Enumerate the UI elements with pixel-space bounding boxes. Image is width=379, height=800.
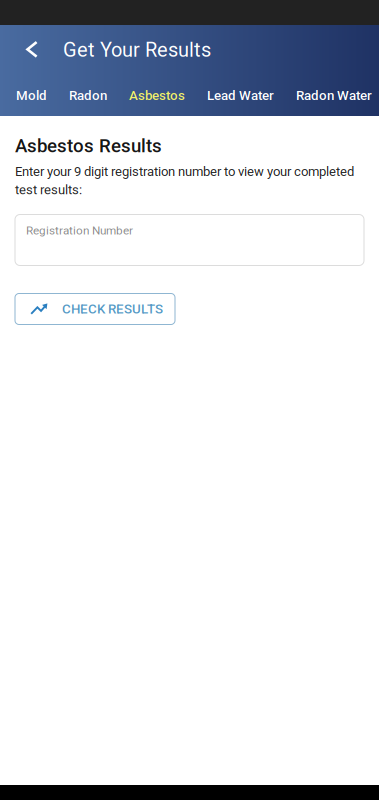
staticText: Asbestos <box>129 88 185 103</box>
staticText: Registration Number <box>26 223 133 237</box>
button[interactable]: Lead Water <box>196 75 285 116</box>
button[interactable]: Asbestos <box>118 75 196 116</box>
button[interactable]: Mold <box>5 75 58 116</box>
staticText: Radon <box>69 88 107 103</box>
staticText: Asbestos Results <box>15 135 162 157</box>
button[interactable]: Radon Water <box>285 75 379 116</box>
staticText: Enter your 9 digit registration number t… <box>15 164 354 197</box>
button[interactable]: CHECK RESULTS <box>15 293 175 324</box>
staticText: Lead Water <box>207 88 274 103</box>
staticText: Get Your Results <box>63 38 211 62</box>
staticText: CHECK RESULTS <box>62 301 163 317</box>
button[interactable]: Radon <box>58 75 118 116</box>
button[interactable]: Registration Number <box>15 214 364 265</box>
staticText: Mold <box>16 88 47 103</box>
button[interactable]: Back <box>0 25 63 75</box>
staticText: Radon Water <box>296 88 372 103</box>
